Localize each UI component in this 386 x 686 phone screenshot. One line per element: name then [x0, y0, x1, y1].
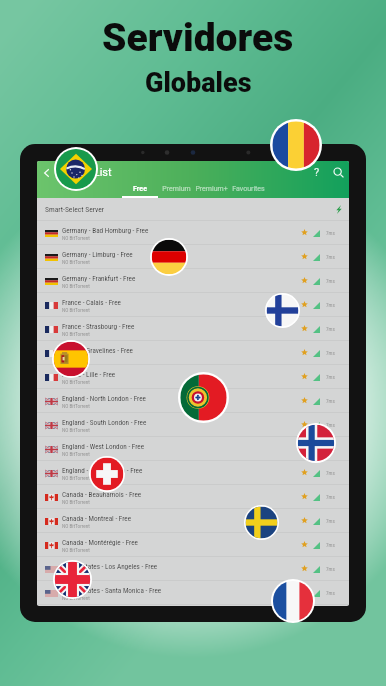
staticText: NO BitTorrent [62, 403, 90, 409]
staticText: 7ms [326, 278, 335, 284]
button[interactable]: Search [330, 164, 346, 180]
staticText: Free [133, 185, 147, 193]
button[interactable]: England - North London - Free [37, 389, 349, 413]
staticText: England - East London - Free [62, 466, 143, 474]
button[interactable]: Canada - Beauharnois - Free [37, 485, 349, 509]
staticText: NO BitTorrent [62, 523, 90, 529]
staticText: NO BitTorrent [62, 427, 90, 433]
staticText: NO BitTorrent [62, 451, 90, 457]
staticText: France - Calais - Free [62, 298, 121, 306]
staticText: NO BitTorrent [62, 475, 90, 481]
staticText: Smart-Select Server [45, 205, 105, 214]
staticText: NO BitTorrent [62, 547, 90, 553]
staticText: 7ms [326, 326, 335, 332]
button[interactable]: United States - Santa Monica - Free [37, 581, 349, 605]
staticText: 7ms [326, 542, 335, 548]
button[interactable]: France - Gravelines - Free [37, 341, 349, 365]
staticText: France - Strasbourg - Free [62, 322, 135, 330]
staticText: Servidores [102, 15, 294, 61]
staticText: 7ms [326, 302, 335, 308]
staticText: NO BitTorrent [62, 595, 90, 601]
staticText: 7ms [326, 566, 335, 572]
button[interactable]: Germany - Frankfurt - Free [37, 269, 349, 293]
staticText: NO BitTorrent [62, 379, 90, 385]
button[interactable]: France - Lille - Free [37, 365, 349, 389]
button[interactable]: Canada - Montérégie - Free [37, 533, 349, 557]
button[interactable]: France - Strasbourg - Free [37, 317, 349, 341]
staticText: NO BitTorrent [62, 355, 90, 361]
staticText: 7ms [326, 254, 335, 260]
staticText: NO BitTorrent [62, 307, 90, 313]
staticText: France - Lille - Free [62, 370, 116, 378]
staticText: 7ms [326, 470, 335, 476]
staticText: 7ms [326, 446, 335, 452]
staticText: NO BitTorrent [62, 259, 90, 265]
staticText: NO BitTorrent [62, 235, 90, 241]
staticText: England - North London - Free [62, 394, 146, 402]
button[interactable]: Free [104, 183, 176, 198]
staticText: NO BitTorrent [62, 571, 90, 577]
staticText: England - South London - Free [62, 418, 147, 426]
staticText: Favourites [232, 185, 265, 193]
staticText: France - Gravelines - Free [62, 346, 133, 354]
staticText: Germany - Limburg - Free [62, 250, 133, 258]
staticText: NO BitTorrent [62, 331, 90, 337]
staticText: 7ms [326, 518, 335, 524]
staticText: 7ms [326, 398, 335, 404]
staticText: England - West London - Free [62, 442, 145, 450]
button[interactable]: Premium+ [175, 183, 247, 198]
button[interactable]: England - East London - Free [37, 461, 349, 485]
staticText: Canada - Montreal - Free [62, 514, 132, 522]
staticText: 7ms [326, 422, 335, 428]
button[interactable]: Favourites [212, 183, 284, 198]
button[interactable]: Premium [140, 183, 212, 198]
staticText: United States - Los Angeles - Free [62, 562, 158, 570]
staticText: Germany - Bad Homburg - Free [62, 226, 149, 234]
button[interactable]: Smart-Select Server [37, 198, 349, 221]
staticText: NO BitTorrent [62, 283, 90, 289]
staticText: 7ms [326, 590, 335, 596]
button[interactable]: Back [38, 164, 55, 181]
button[interactable]: Canada - Montreal - Free [37, 509, 349, 533]
staticText: Germany - Frankfurt - Free [62, 274, 136, 282]
button[interactable]: Germany - Bad Homburg - Free [37, 221, 349, 245]
staticText: NO BitTorrent [62, 499, 90, 505]
staticText: Canada - Montérégie - Free [62, 538, 138, 546]
staticText: Premium [162, 185, 191, 193]
staticText: Premium+ [195, 185, 228, 193]
button[interactable]: England - South London - Free [37, 413, 349, 437]
staticText: 7ms [326, 374, 335, 380]
staticText: ? [314, 166, 320, 179]
button[interactable]: France - Calais - Free [37, 293, 349, 317]
staticText: Canada - Beauharnois - Free [62, 490, 142, 498]
button[interactable]: United States - Los Angeles - Free [37, 557, 349, 581]
staticText: 7ms [326, 494, 335, 500]
staticText: Server List [60, 166, 112, 179]
button[interactable]: Germany - Limburg - Free [37, 245, 349, 269]
button[interactable]: England - West London - Free [37, 437, 349, 461]
staticText: United States - Santa Monica - Free [62, 586, 162, 594]
staticText: 7ms [326, 230, 335, 236]
staticText: Globales [145, 67, 252, 99]
staticText: 7ms [326, 350, 335, 356]
button[interactable]: Help [309, 164, 325, 180]
